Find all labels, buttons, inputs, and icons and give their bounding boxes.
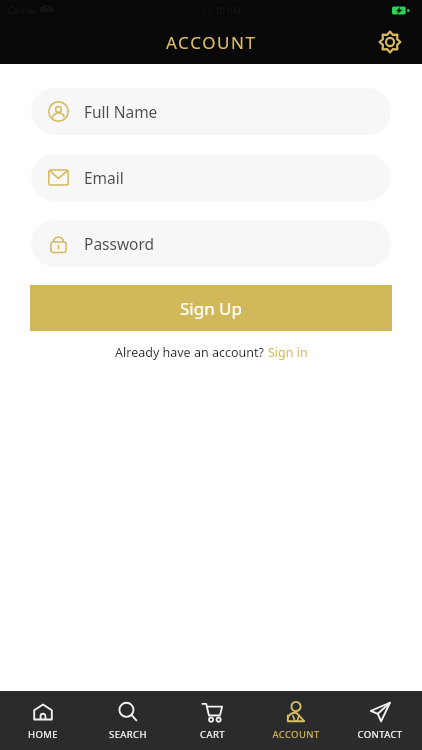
staticText: Already have an account?	[115, 344, 268, 361]
button[interactable]: HOME	[0, 691, 85, 750]
staticText: SEARCH	[109, 728, 147, 741]
button[interactable]: Email	[31, 154, 391, 201]
button[interactable]: CONTACT	[338, 691, 422, 750]
staticText: ACCOUNT	[272, 728, 320, 741]
staticText: Sign in	[268, 344, 308, 361]
button[interactable]: CART	[170, 691, 254, 750]
button[interactable]: SEARCH	[85, 691, 170, 750]
button[interactable]: Settings	[370, 22, 410, 62]
staticText: CART	[200, 728, 225, 741]
staticText: ACCOUNT	[166, 31, 257, 54]
staticText: Email	[84, 167, 124, 188]
staticText: Carrier	[8, 4, 38, 16]
button[interactable]: Full Name	[31, 88, 391, 135]
button[interactable]: Sign Up	[30, 285, 392, 331]
button[interactable]: Password	[31, 220, 391, 267]
button[interactable]: Sign in	[268, 344, 308, 361]
staticText: Password	[84, 233, 155, 254]
staticText: Sign Up	[180, 297, 242, 320]
staticText: CONTACT	[357, 728, 403, 741]
staticText: Full Name	[84, 101, 158, 122]
staticText: HOME	[28, 728, 58, 741]
button[interactable]: ACCOUNT	[254, 691, 338, 750]
staticText: 10:10 PM	[202, 4, 241, 16]
